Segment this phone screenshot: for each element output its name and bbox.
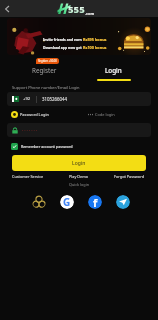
staticText: Download app now get xyxy=(43,45,83,50)
staticText: Login xyxy=(72,160,86,167)
staticText: Login xyxy=(105,66,122,75)
staticText: Invite friends and earn xyxy=(43,37,83,42)
button[interactable]: Invite friends and earn xyxy=(7,18,151,55)
staticText: 3105266044 xyxy=(42,96,68,102)
button[interactable]: Back xyxy=(0,2,13,15)
staticText: Password Login xyxy=(20,112,49,117)
button[interactable]: Login xyxy=(81,66,146,82)
staticText: Rs100 bonus xyxy=(83,45,107,50)
button[interactable]: Play Demo xyxy=(69,174,89,179)
button[interactable]: Password Login xyxy=(11,111,49,118)
staticText: Register +50.00 xyxy=(38,59,57,63)
staticText: G xyxy=(63,195,71,209)
staticText: Register xyxy=(32,66,57,75)
staticText: .com xyxy=(85,11,95,16)
button[interactable]: Quick login xyxy=(32,195,46,209)
staticText: Support Phone number/Email Login xyxy=(12,85,80,90)
staticText: +92 xyxy=(23,96,31,102)
button[interactable]: Customer Service xyxy=(12,174,44,179)
button[interactable]: Login xyxy=(12,155,146,171)
staticText: Remember account password xyxy=(21,144,73,149)
button[interactable]: Google login xyxy=(60,195,74,209)
staticText: • • • • • • • xyxy=(22,128,38,133)
button[interactable]: Telegram login xyxy=(116,195,130,209)
button[interactable]: Facebook login xyxy=(88,195,102,209)
staticText: Rs595 bonus xyxy=(83,37,107,42)
button[interactable]: Forgot Password xyxy=(114,174,144,179)
button[interactable]: Register xyxy=(12,66,77,82)
button[interactable]: Remember account password xyxy=(11,143,73,150)
staticText: Code login xyxy=(95,112,115,117)
button[interactable]: +92 xyxy=(7,92,151,106)
staticText: f xyxy=(93,195,98,209)
staticText: 555 xyxy=(68,3,85,16)
staticText: Quick login xyxy=(0,182,158,187)
button[interactable]: • • • • • • • xyxy=(7,123,151,137)
button[interactable]: Code login xyxy=(88,112,115,117)
